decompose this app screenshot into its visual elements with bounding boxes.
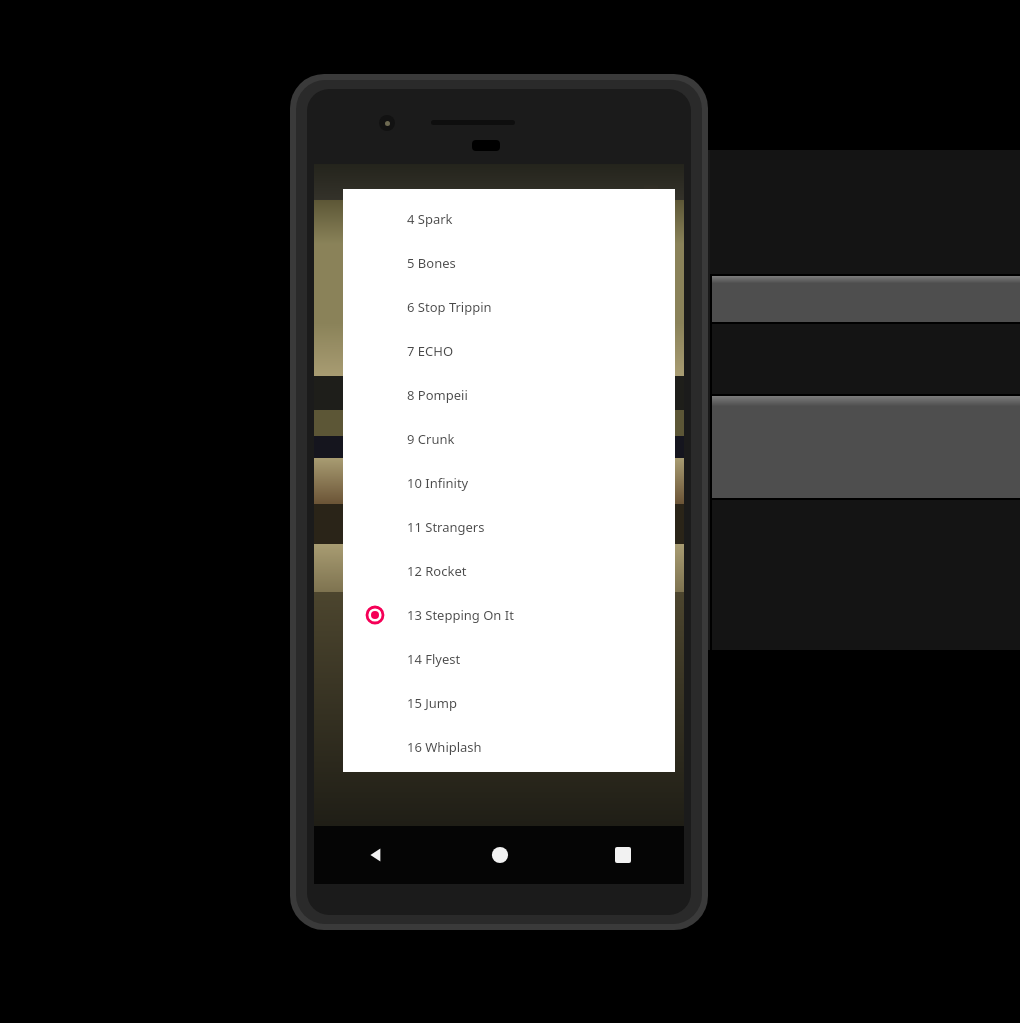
staticText: 6 Stop Trippin xyxy=(407,298,492,316)
button[interactable]: Back xyxy=(314,826,438,884)
button[interactable]: 10 Infinity xyxy=(343,461,675,505)
staticText: 8 Pompeii xyxy=(407,386,468,404)
button[interactable]: 13 Stepping On It xyxy=(343,593,675,637)
button[interactable]: Home xyxy=(438,826,561,884)
button[interactable]: 4 Spark xyxy=(343,197,675,241)
button[interactable]: 6 Stop Trippin xyxy=(343,285,675,329)
button[interactable]: 15 Jump xyxy=(343,681,675,725)
button[interactable]: 16 Whiplash xyxy=(343,725,675,769)
staticText: 10 Infinity xyxy=(407,474,469,492)
staticText: 13 Stepping On It xyxy=(407,606,514,624)
button[interactable]: 5 Bones xyxy=(343,241,675,285)
button[interactable]: 7 ECHO xyxy=(343,329,675,373)
staticText: 12 Rocket xyxy=(407,562,467,580)
staticText: 11 Strangers xyxy=(407,518,485,536)
staticText: 4 Spark xyxy=(407,210,453,228)
button[interactable]: Recent apps xyxy=(561,826,684,884)
button[interactable]: 9 Crunk xyxy=(343,417,675,461)
staticText: 15 Jump xyxy=(407,694,457,712)
staticText: 5 Bones xyxy=(407,254,456,272)
staticText: 7 ECHO xyxy=(407,342,454,360)
staticText: 14 Flyest xyxy=(407,650,461,668)
button[interactable]: 12 Rocket xyxy=(343,549,675,593)
button[interactable]: 8 Pompeii xyxy=(343,373,675,417)
staticText: 9 Crunk xyxy=(407,430,455,448)
button[interactable]: 11 Strangers xyxy=(343,505,675,549)
button[interactable]: 14 Flyest xyxy=(343,637,675,681)
staticText: 16 Whiplash xyxy=(407,738,482,756)
